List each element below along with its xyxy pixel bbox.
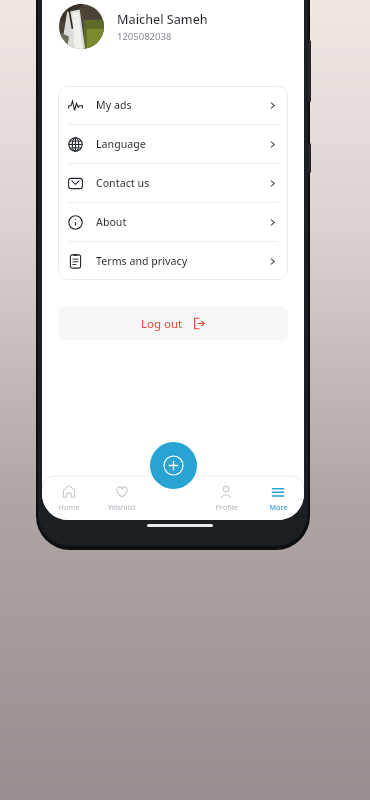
button[interactable]: Contact us [68,164,278,202]
button[interactable]: Wishlist [95,476,148,520]
button[interactable]: Home [42,476,95,520]
staticText: Log out [141,316,183,332]
staticText: Maichel Sameh [117,11,208,28]
staticText: Home [58,502,80,512]
staticText: Language [96,137,267,151]
staticText: 1205082038 [117,30,172,43]
staticText: My ads [96,98,267,112]
staticText: Contact us [96,176,267,190]
staticText: Wishlist [108,502,136,512]
staticText: Terms and privacy [96,254,267,268]
button[interactable]: Language [68,125,278,163]
button[interactable]: Maichel Sameh [42,0,304,53]
button[interactable]: Log out [58,307,288,340]
button[interactable]: My ads [68,86,278,124]
staticText: Profile [215,502,238,512]
button[interactable]: More [252,476,304,520]
button[interactable]: Terms and privacy [68,242,278,280]
button[interactable]: About [68,203,278,241]
button[interactable]: Profile [200,476,252,520]
staticText: More [269,502,288,512]
button[interactable]: Add [150,442,197,489]
staticText: About [96,215,267,229]
